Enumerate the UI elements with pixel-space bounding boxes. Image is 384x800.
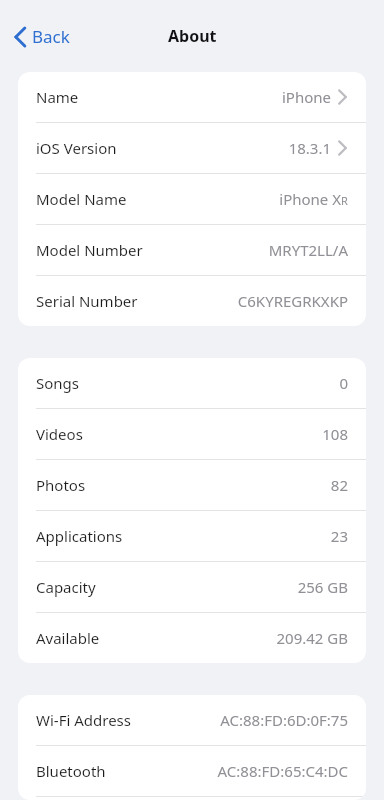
staticText: Videos [36,424,83,444]
staticText: iOS Version [36,138,117,158]
button[interactable]: Model Number [18,225,366,275]
button[interactable]: Photos [18,460,366,510]
staticText: Applications [36,526,123,546]
button[interactable]: Back [10,21,74,52]
staticText: Capacity [36,577,96,597]
button[interactable]: Name [18,72,366,122]
staticText: C6KYREGRKXKP [237,291,348,311]
staticText: 256 GB [297,577,348,597]
button[interactable]: Songs [18,358,366,408]
staticText: 209.42 GB [276,628,348,648]
staticText: 108 [322,424,348,444]
button[interactable]: Model Name [18,174,366,224]
staticText: Model Name [36,189,127,209]
staticText: Model Number [36,240,143,260]
button[interactable]: iOS Version [18,123,366,173]
staticText: Available [36,628,100,648]
staticText: MRYT2LL/A [268,240,348,260]
staticText: R [341,193,348,208]
staticText: 82 [330,475,348,495]
staticText: Bluetooth [36,761,106,781]
button[interactable]: Applications [18,511,366,561]
staticText: Serial Number [36,291,138,311]
staticText: Back [32,25,70,48]
staticText: 0 [339,373,348,393]
staticText: Wi-Fi Address [36,710,131,730]
button[interactable]: Available [18,613,366,663]
button[interactable]: Wi-Fi Address [18,695,366,745]
button[interactable]: Bluetooth [18,746,366,796]
staticText: AC:88:FD:6D:0F:75 [220,710,348,730]
staticText: 18.3.1 [288,138,331,158]
button[interactable]: Capacity [18,562,366,612]
staticText: About [168,25,217,47]
staticText: Songs [36,373,79,393]
staticText: AC:88:FD:65:C4:DC [217,761,348,781]
button[interactable]: Serial Number [18,276,366,326]
staticText: Name [36,87,79,107]
staticText: iPhone [281,87,331,107]
button[interactable]: Videos [18,409,366,459]
staticText: 23 [330,526,348,546]
staticText: iPhone X [279,189,341,209]
staticText: Photos [36,475,86,495]
